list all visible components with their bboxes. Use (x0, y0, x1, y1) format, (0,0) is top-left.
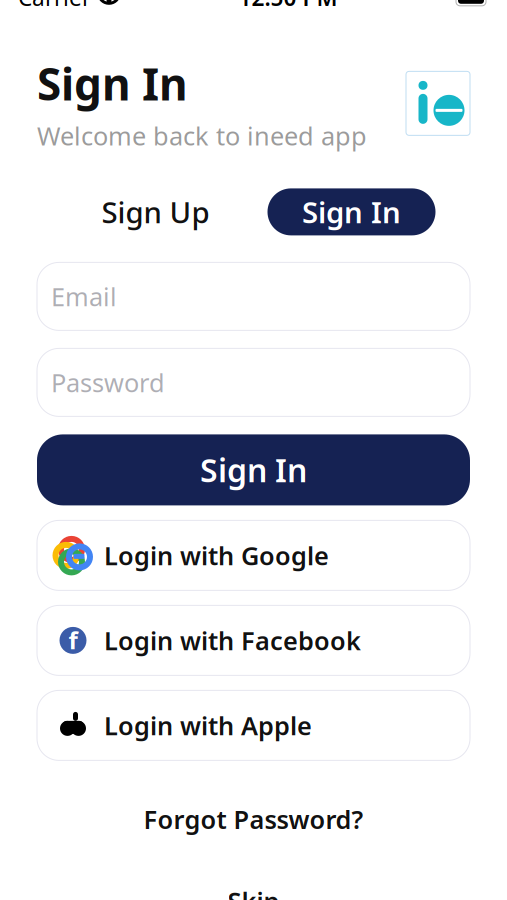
staticText: Sign Up (101, 192, 209, 231)
button[interactable]: Login with Google (37, 520, 470, 590)
staticText: Skip (227, 884, 279, 900)
staticText: Forgot Password? (143, 802, 363, 836)
staticText: 12:50 PM (238, 0, 337, 12)
staticText: Welcome back to ineed app (37, 119, 367, 152)
button[interactable]: Login with Apple (37, 690, 470, 760)
staticText: Login with Google (104, 539, 329, 572)
staticText: Login with Apple (104, 709, 312, 742)
button[interactable]: f (37, 605, 470, 675)
staticText: Email (51, 280, 117, 313)
button[interactable]: Skip (207, 878, 299, 900)
staticText: Sign In (200, 449, 307, 491)
staticText: Password (51, 366, 165, 399)
staticText: Login with Facebook (104, 624, 361, 657)
button[interactable]: Sign In (37, 434, 470, 505)
button[interactable]: Email (37, 262, 470, 330)
staticText: Sign In (37, 54, 188, 113)
button[interactable]: Password (37, 348, 470, 416)
button[interactable]: Sign Up (71, 188, 239, 235)
staticText: f (68, 624, 77, 656)
staticText: Sign In (302, 192, 401, 231)
button[interactable]: Sign In (267, 188, 435, 235)
staticText: Carrier (18, 0, 91, 12)
button[interactable]: Forgot Password? (123, 796, 383, 842)
